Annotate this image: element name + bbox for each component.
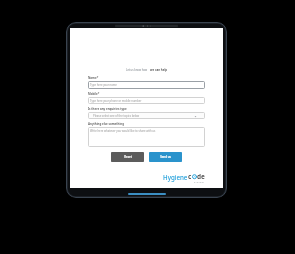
staticText: c [188, 172, 192, 181]
staticText: de [197, 172, 205, 181]
staticText: Reset [124, 155, 132, 159]
button[interactable]: Please select one of the topics below [88, 112, 205, 119]
button[interactable]: Type here your phone or mobile number [88, 97, 205, 104]
staticText: Let us know how [126, 68, 148, 72]
staticText: Hygiene [163, 173, 188, 181]
button[interactable]: Send us [149, 152, 182, 162]
staticText: Please select one of the topics below [93, 114, 140, 118]
staticText: Anything else something [88, 122, 125, 126]
staticText: Type here your name [90, 83, 117, 87]
staticText: Send us [160, 155, 171, 159]
staticText: Mobile* [88, 92, 100, 96]
staticText: Name* [88, 76, 99, 80]
staticText: S Y S T E M [194, 181, 204, 184]
button[interactable]: Reset [111, 152, 144, 162]
staticText: we can help [150, 68, 168, 72]
staticText: Is there any enquiries type [88, 107, 127, 111]
staticText: Write here whatever you would like to sh… [90, 129, 156, 133]
button[interactable]: Type here your name [88, 81, 205, 89]
button[interactable]: Write here whatever you would like to sh… [88, 127, 205, 147]
staticText: Type here your phone or mobile number [90, 99, 142, 103]
